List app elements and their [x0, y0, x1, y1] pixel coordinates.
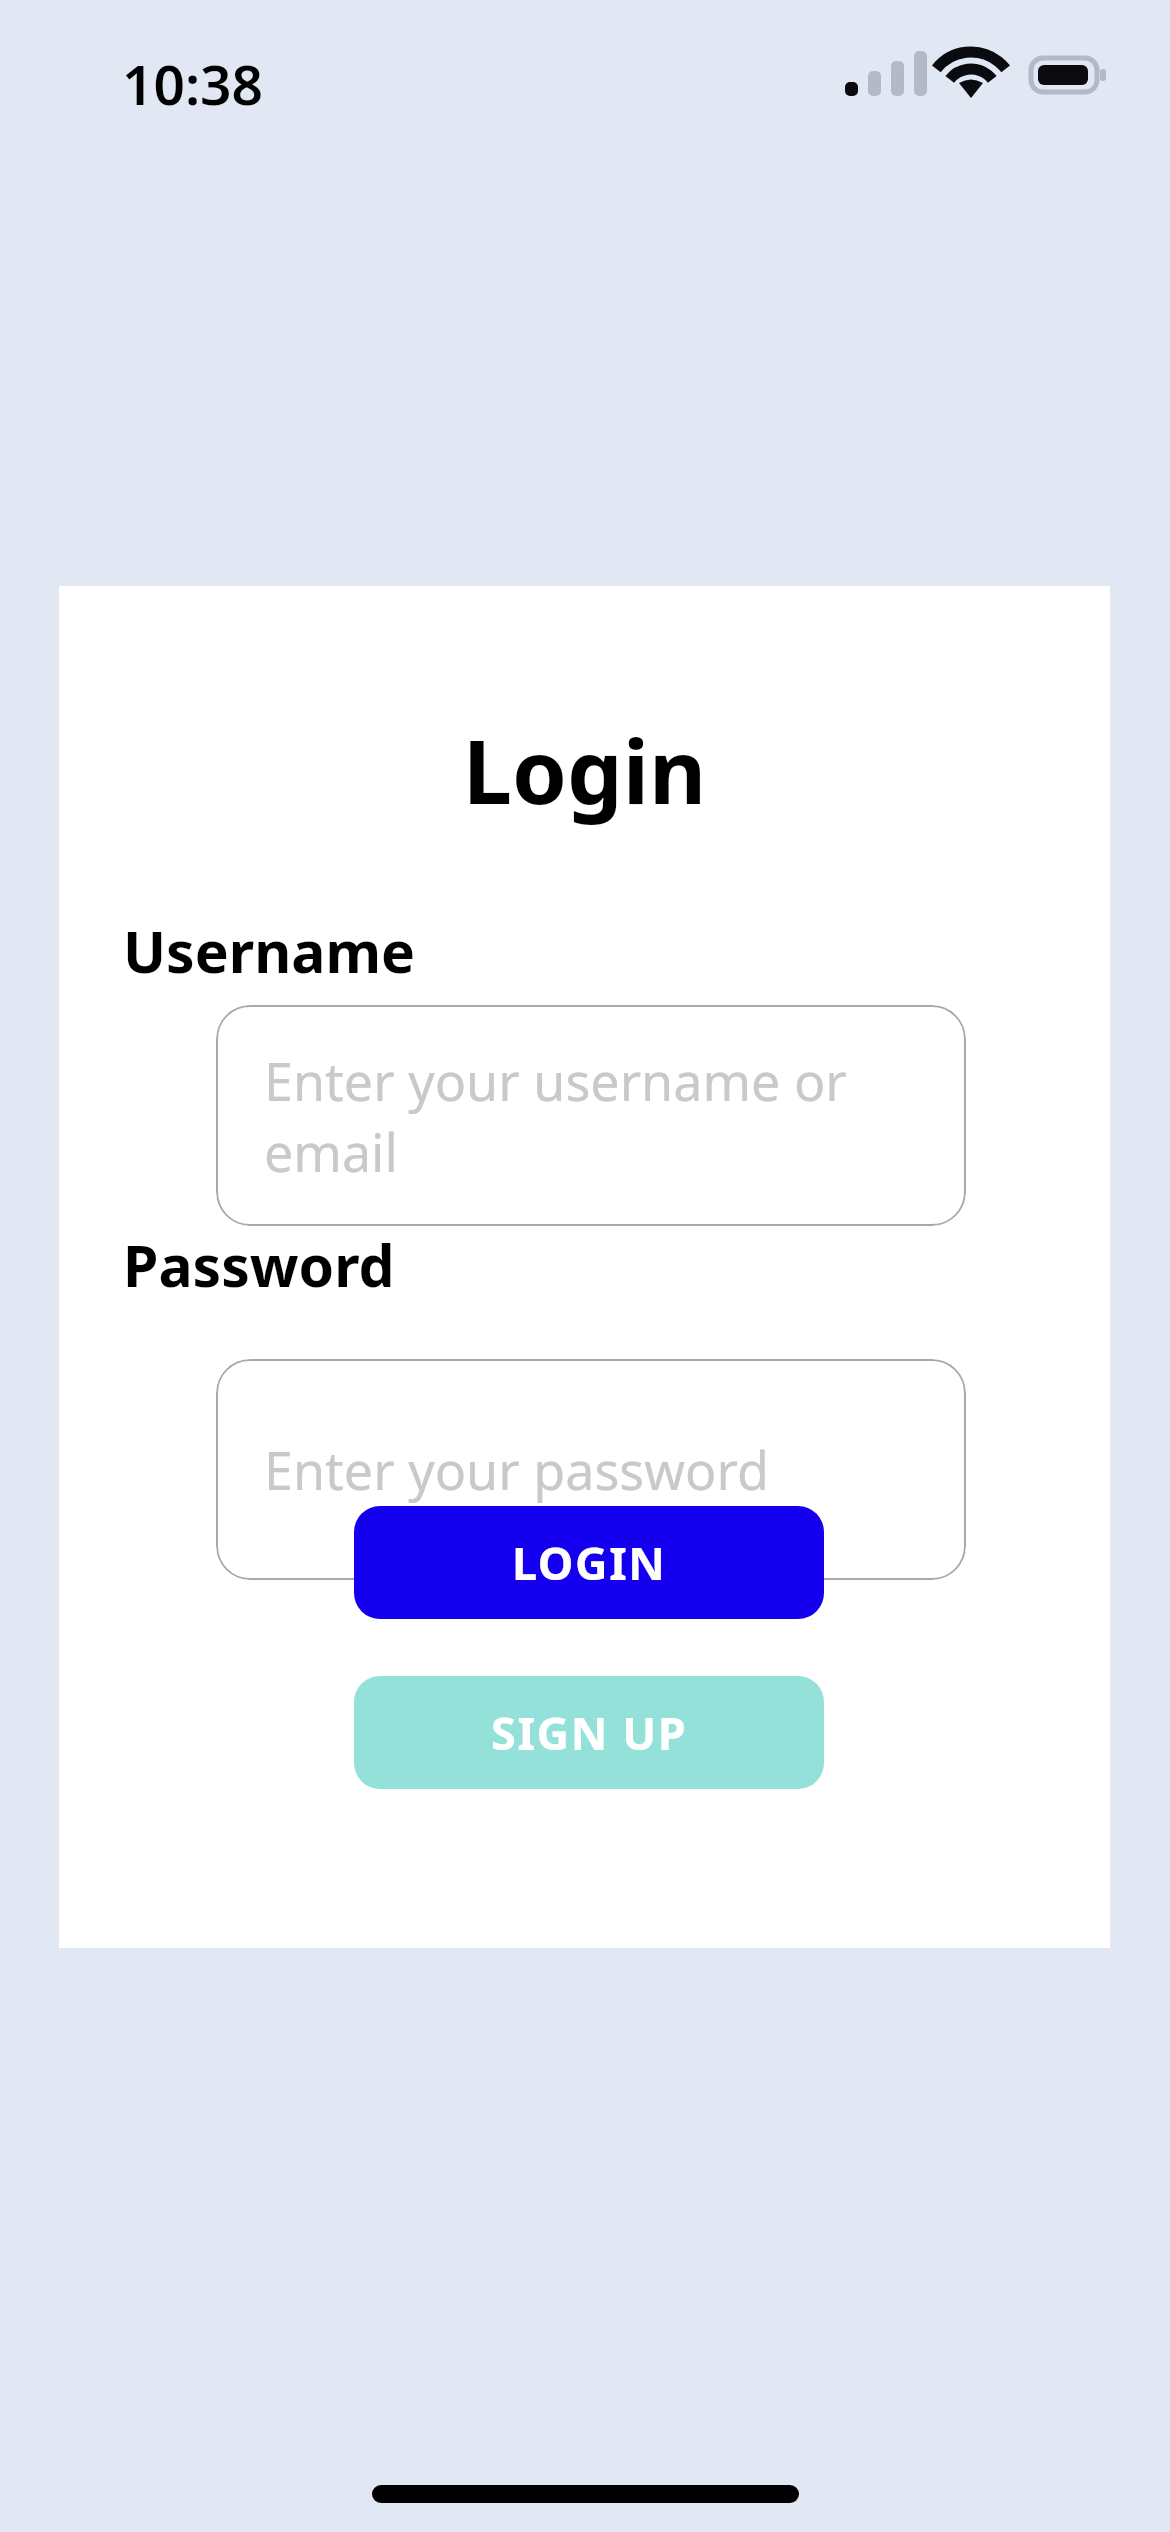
button[interactable]: SIGN UP [354, 1676, 824, 1789]
staticText: 10:38 [122, 46, 264, 121]
other: Signal, Wi-Fi and battery status [845, 48, 1100, 104]
staticText: LOGIN [512, 1532, 667, 1593]
staticText: Login [59, 710, 1110, 830]
staticText: Username [123, 912, 416, 990]
button[interactable]: Password input [216, 1359, 966, 1580]
staticText: Password [123, 1226, 395, 1304]
staticText: Enter your password [264, 1434, 769, 1505]
staticText: SIGN UP [491, 1702, 688, 1763]
staticText: Enter your username or email [264, 1045, 966, 1187]
button[interactable]: LOGIN [354, 1506, 824, 1619]
button[interactable]: Username input [216, 1005, 966, 1226]
